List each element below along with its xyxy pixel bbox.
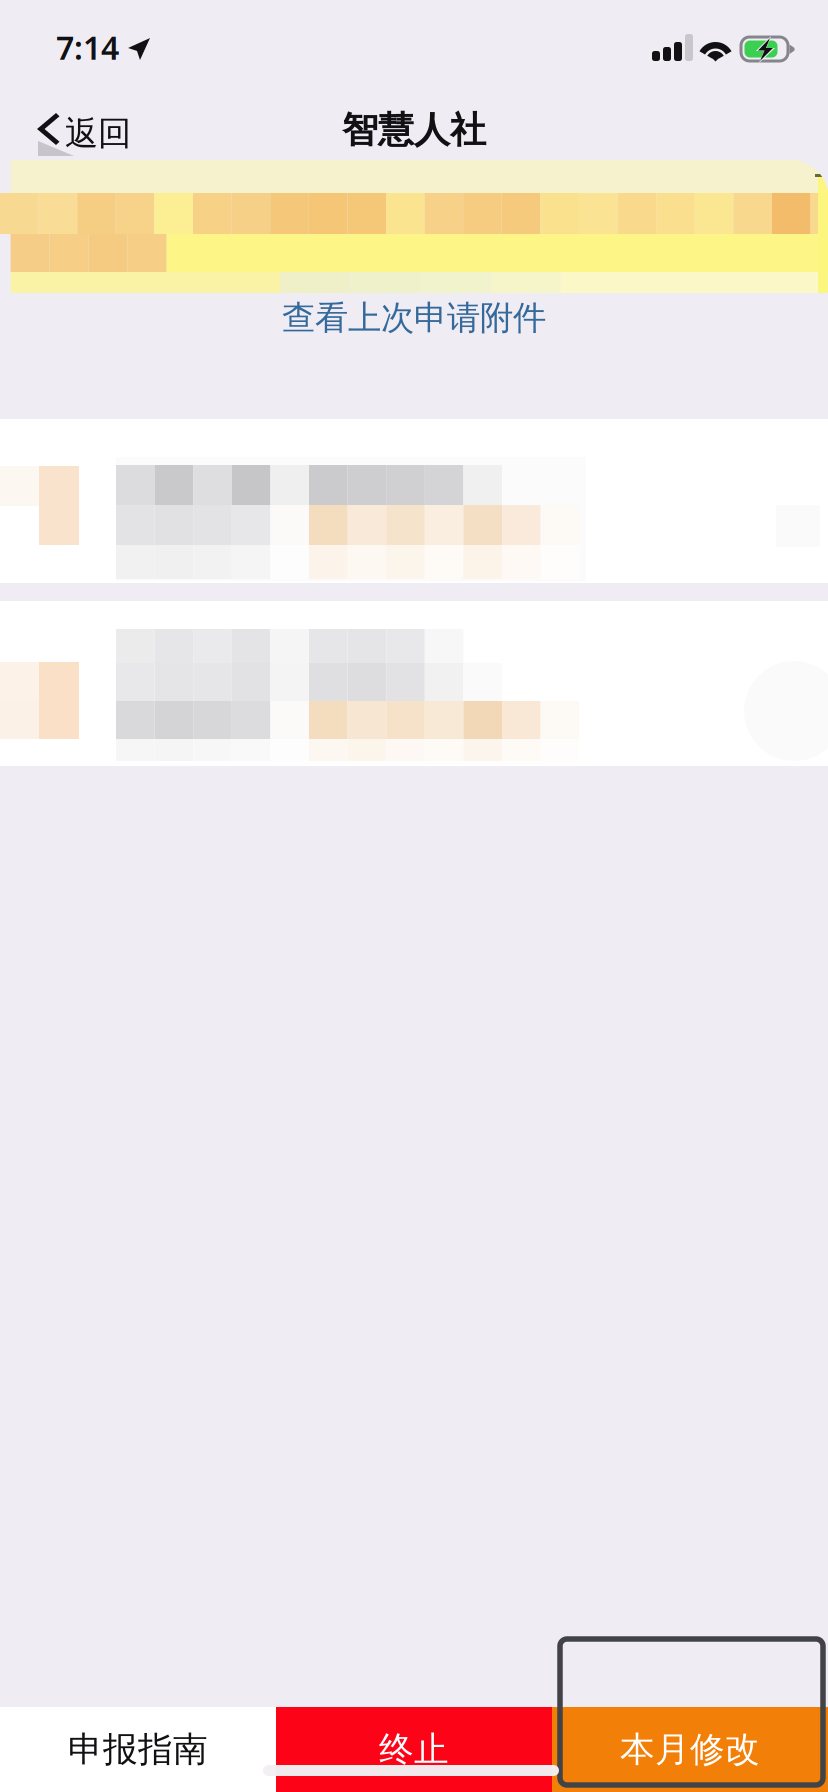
staticText: 查看上次申请附件 — [282, 297, 546, 338]
staticText: 返回 — [65, 113, 131, 154]
button[interactable]: 申报指南 — [0, 1707, 276, 1792]
staticText: 7:14 — [56, 26, 119, 68]
staticText: 终止 — [379, 1728, 449, 1771]
staticText: 申报指南 — [68, 1728, 208, 1771]
button[interactable]: 返回 — [0, 88, 180, 160]
staticText: 本月修改 — [620, 1728, 760, 1771]
button[interactable]: 查看上次申请附件 — [0, 283, 828, 353]
button[interactable]: 终止 — [276, 1707, 552, 1792]
button[interactable]: 本月修改 — [552, 1707, 828, 1792]
staticText: 智慧人社 — [342, 108, 486, 152]
